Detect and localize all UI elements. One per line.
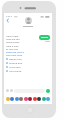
button[interactable]: Sticker <box>6 97 10 101</box>
button[interactable]: Send <box>46 89 50 93</box>
button[interactable]: Back <box>5 18 10 23</box>
button[interactable]: Camera <box>6 89 9 92</box>
staticText: Third item <box>9 65 21 68</box>
staticText: Last choice <box>9 69 22 72</box>
button[interactable]: Photos <box>10 89 13 92</box>
staticText: how are you <box>6 37 20 40</box>
button[interactable]: Sticker <box>28 97 32 101</box>
staticText: Take a look <box>6 44 19 47</box>
button[interactable]: Home <box>26 106 34 114</box>
staticText: see more here <box>6 53 23 56</box>
button[interactable]: Sticker <box>46 97 50 101</box>
button[interactable]: Sticker <box>33 97 37 101</box>
staticText: Second pick <box>9 61 23 64</box>
button[interactable]: Sticker <box>19 97 23 101</box>
button[interactable]: Sticker <box>42 97 46 101</box>
button[interactable]: Sticker <box>24 97 28 101</box>
button[interactable]: Sticker <box>37 97 41 101</box>
button[interactable]: Sticker <box>10 97 14 101</box>
button[interactable] <box>39 35 50 40</box>
staticText: www.site.com/a <box>6 50 24 53</box>
staticText: Hello there <box>6 34 19 37</box>
staticText: doing today <box>6 40 20 43</box>
button[interactable]: Sticker <box>15 97 19 101</box>
staticText: Option one <box>9 57 22 60</box>
staticText: at this one <box>6 47 18 50</box>
